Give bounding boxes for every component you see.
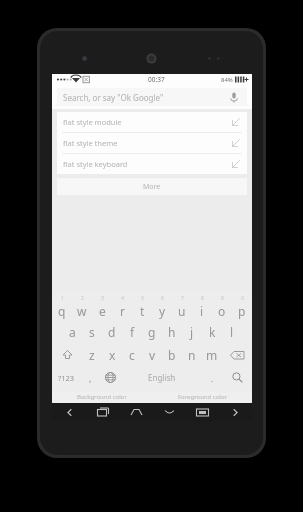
staticText: u: [178, 303, 186, 319]
staticText: Background color: [77, 393, 127, 401]
button[interactable]: Home: [120, 403, 153, 421]
button[interactable]: 2: [72, 294, 92, 320]
staticText: z: [89, 347, 95, 363]
staticText: m: [206, 347, 218, 363]
staticText: English: [148, 372, 176, 383]
button[interactable]: English: [121, 366, 203, 389]
button[interactable]: More: [57, 178, 247, 195]
button[interactable]: Keyboard: [186, 403, 219, 421]
button[interactable]: Next: [219, 403, 252, 421]
staticText: 5: [141, 295, 144, 302]
button[interactable]: 6: [152, 294, 172, 320]
button[interactable]: ,: [81, 366, 100, 389]
button[interactable]: Previous: [52, 403, 86, 421]
staticText: e: [99, 303, 106, 319]
staticText: a: [69, 324, 76, 340]
staticText: g: [148, 324, 156, 340]
button[interactable]: j: [182, 320, 202, 343]
button[interactable]: Foreground color: [152, 391, 252, 403]
staticText: Foreground color: [178, 393, 227, 401]
staticText: 84%: [221, 76, 233, 84]
staticText: y: [159, 303, 166, 319]
staticText: t: [140, 303, 145, 319]
button[interactable]: 5: [132, 294, 152, 320]
button[interactable]: c: [122, 343, 142, 366]
button[interactable]: Search, or say "Ok Google": [57, 88, 247, 106]
staticText: w: [77, 303, 87, 319]
staticText: flat style module: [63, 117, 122, 127]
staticText: r: [120, 303, 125, 319]
button[interactable]: d: [102, 320, 122, 343]
staticText: d: [108, 324, 116, 340]
button[interactable]: flat style keyboard: [57, 154, 247, 174]
button[interactable]: 4: [112, 294, 132, 320]
staticText: More: [143, 182, 161, 192]
button[interactable]: m: [202, 343, 222, 366]
staticText: 0: [241, 295, 244, 302]
staticText: l: [230, 324, 234, 340]
button[interactable]: flat style module: [57, 112, 247, 132]
button[interactable]: Search: [222, 366, 252, 389]
button[interactable]: x: [102, 343, 122, 366]
button[interactable]: 3: [92, 294, 112, 320]
staticText: f: [130, 324, 135, 340]
staticText: 00:37: [148, 75, 165, 84]
staticText: .: [211, 372, 214, 384]
staticText: flat style theme: [63, 138, 118, 148]
button[interactable]: 8: [192, 294, 212, 320]
staticText: flat style keyboard: [63, 159, 128, 169]
staticText: ,: [89, 372, 92, 384]
staticText: 9: [221, 295, 224, 302]
button[interactable]: .: [203, 366, 222, 389]
staticText: 4: [121, 295, 124, 302]
button[interactable]: g: [142, 320, 162, 343]
staticText: q: [58, 303, 66, 319]
button[interactable]: Back: [153, 403, 186, 421]
staticText: Search, or say "Ok Google": [63, 92, 164, 103]
staticText: 3: [101, 295, 104, 302]
staticText: o: [218, 303, 226, 319]
staticText: i: [200, 303, 204, 319]
staticText: j: [190, 324, 194, 340]
staticText: 2: [81, 295, 84, 302]
button[interactable]: 1: [52, 294, 72, 320]
staticText: h: [168, 324, 176, 340]
staticText: 8: [201, 295, 204, 302]
button[interactable]: Recents: [86, 403, 120, 421]
staticText: n: [188, 347, 196, 363]
button[interactable]: ?123: [52, 366, 81, 389]
button[interactable]: 0: [232, 294, 252, 320]
staticText: 1: [61, 295, 64, 302]
button[interactable]: v: [142, 343, 162, 366]
button[interactable]: 7: [172, 294, 192, 320]
button[interactable]: s: [82, 320, 102, 343]
button[interactable]: Shift: [52, 343, 82, 366]
staticText: 6: [161, 295, 164, 302]
staticText: c: [129, 347, 135, 363]
staticText: b: [168, 347, 176, 363]
staticText: ?123: [58, 373, 75, 383]
staticText: 7: [181, 295, 184, 302]
button[interactable]: Voice search: [227, 90, 241, 104]
staticText: x: [109, 347, 116, 363]
button[interactable]: Backspace: [222, 343, 252, 366]
button[interactable]: b: [162, 343, 182, 366]
button[interactable]: h: [162, 320, 182, 343]
staticText: k: [209, 324, 216, 340]
button[interactable]: z: [82, 343, 102, 366]
staticText: p: [238, 303, 246, 319]
staticText: v: [149, 347, 156, 363]
button[interactable]: l: [222, 320, 242, 343]
button[interactable]: n: [182, 343, 202, 366]
button[interactable]: a: [62, 320, 82, 343]
button[interactable]: Background color: [52, 391, 152, 403]
button[interactable]: 9: [212, 294, 232, 320]
button[interactable]: Change language: [100, 366, 121, 389]
button[interactable]: flat style theme: [57, 133, 247, 153]
button[interactable]: f: [122, 320, 142, 343]
button[interactable]: k: [202, 320, 222, 343]
staticText: s: [89, 324, 95, 340]
